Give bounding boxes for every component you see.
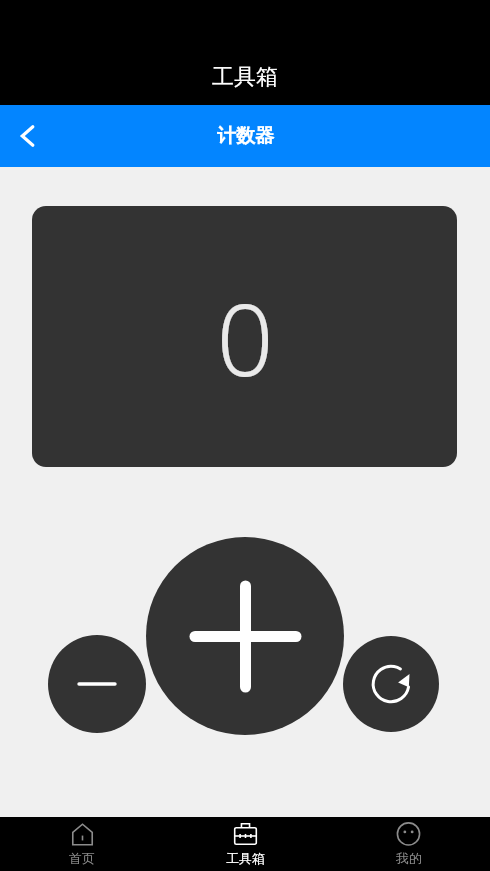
- staticText: 首页: [69, 850, 95, 866]
- button[interactable]: Back: [0, 108, 56, 164]
- button[interactable]: Reset: [343, 636, 439, 732]
- button[interactable]: Increase: [146, 537, 344, 735]
- staticText: 工具箱: [226, 850, 265, 866]
- button[interactable]: 我的: [327, 817, 490, 871]
- staticText: 计数器: [217, 124, 274, 148]
- staticText: 工具箱: [212, 63, 278, 91]
- button[interactable]: Decrease: [48, 635, 146, 733]
- staticText: 我的: [396, 850, 422, 866]
- staticText: 0: [216, 269, 274, 405]
- button[interactable]: 首页: [0, 817, 164, 871]
- button[interactable]: 工具箱: [164, 817, 327, 871]
- button[interactable]: 0: [32, 206, 457, 467]
